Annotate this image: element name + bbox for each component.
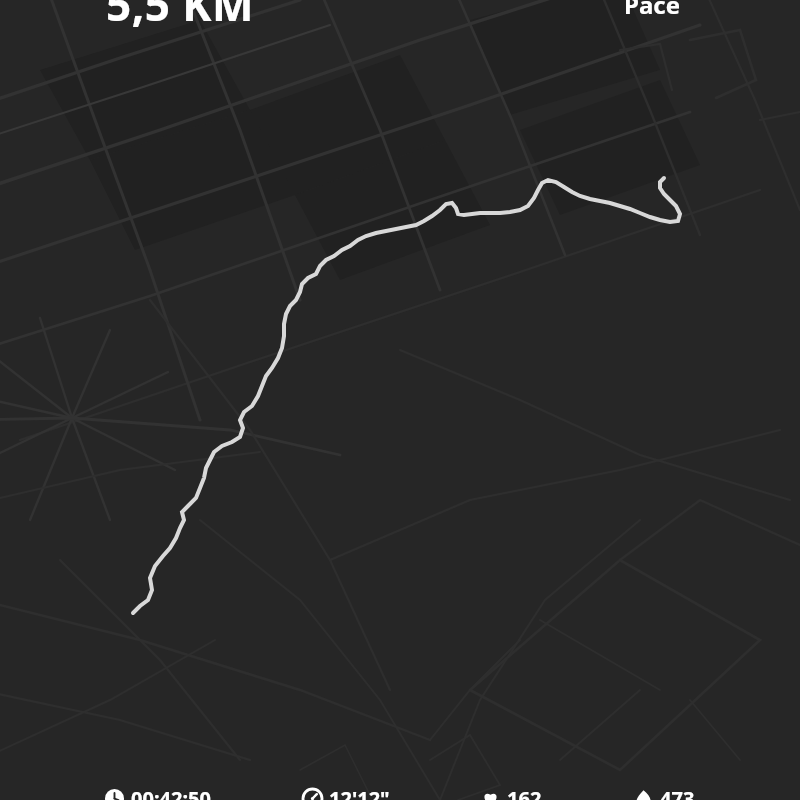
button[interactable]: Calories (630, 783, 699, 800)
staticText: 12'12" (329, 785, 390, 800)
button[interactable]: Duration (101, 783, 215, 800)
button[interactable]: Pace (299, 783, 394, 800)
button[interactable]: Heart rate (477, 783, 546, 800)
staticText: 473 (660, 785, 695, 800)
staticText: 5,5 KM (106, 0, 255, 34)
staticText: 00:42:50 (131, 785, 211, 800)
staticText: Pace (624, 0, 680, 21)
staticText: 162 (507, 785, 542, 800)
